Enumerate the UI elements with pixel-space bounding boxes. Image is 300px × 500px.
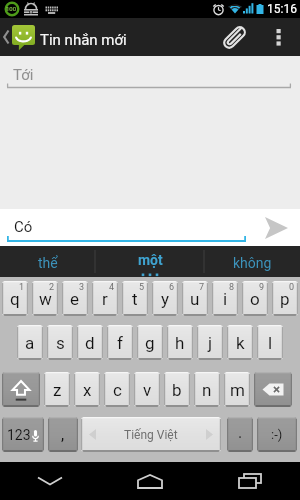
button[interactable]: n [194,372,220,407]
staticText: e [70,289,80,309]
button[interactable]: More options [256,18,300,56]
staticText: j [208,333,213,353]
button[interactable]: h [167,325,193,360]
button[interactable]: a [17,325,43,360]
staticText: d [85,333,95,353]
staticText: l [268,333,273,353]
staticText: g [145,333,155,353]
staticText: n [202,380,212,400]
staticText: w [39,289,52,309]
staticText: q [10,289,20,309]
staticText: f [117,333,123,353]
staticText: Tin nhắn mới [40,31,127,49]
button[interactable]: Recent apps [200,462,300,500]
staticText: k [236,333,245,353]
staticText: Có [14,218,33,236]
button[interactable]: thể [0,246,95,277]
staticText: Tiếng Việt [124,428,178,442]
button[interactable]: Home [100,462,200,500]
staticText: c [113,380,122,400]
staticText: 2 [49,282,55,293]
button[interactable]: w [32,281,58,316]
staticText: , [61,425,65,444]
button[interactable]: f [107,325,133,360]
staticText: 9 [259,282,265,293]
button[interactable]: o [242,281,268,316]
button[interactable]: 123 [2,417,44,452]
staticText: 123 [7,427,31,443]
staticText: . [238,423,243,442]
staticText: 8 [229,282,235,293]
button[interactable]: :-) [257,417,297,452]
staticText: o [250,289,260,309]
button[interactable]: i [212,281,238,316]
staticText: t [132,289,138,309]
button[interactable]: j [197,325,223,360]
staticText: a [25,333,35,353]
staticText: :-) [271,427,283,442]
button[interactable]: một [95,246,204,277]
button[interactable]: u [182,281,208,316]
staticText: s [56,333,65,353]
button[interactable]: q [2,281,28,316]
staticText: 100 [6,5,17,12]
staticText: 0 [289,282,295,293]
button[interactable]: m [224,372,250,407]
staticText: Tới [13,66,34,84]
button[interactable]: t [122,281,148,316]
button[interactable]: Tin nhắn mới [0,18,127,56]
button[interactable]: y [152,281,178,316]
staticText: 3 [79,282,85,293]
staticText: 4 [109,282,115,293]
staticText: 5 [139,282,145,293]
staticText: thể [38,255,58,271]
button[interactable]: g [137,325,163,360]
button[interactable]: k [227,325,253,360]
button[interactable]: Attach [212,18,256,56]
button[interactable]: c [104,372,130,407]
staticText: 1 [19,282,25,293]
button[interactable]: Send [252,209,300,246]
button[interactable]: e [62,281,88,316]
button[interactable]: s [47,325,73,360]
button[interactable]: d [77,325,103,360]
staticText: h [175,333,185,353]
staticText: 15:16 [267,2,297,16]
button[interactable]: v [134,372,160,407]
button[interactable]: p [272,281,298,316]
button[interactable]: không [204,246,300,277]
staticText: i [223,289,228,309]
button[interactable] [254,372,292,407]
staticText: y [161,289,170,309]
button[interactable]: Hide keyboard [0,462,100,500]
staticText: b [172,380,182,400]
staticText: một [138,252,163,268]
button[interactable] [2,372,40,407]
button[interactable]: Tiếng Việt [81,417,221,452]
staticText: z [53,380,62,400]
button[interactable]: x [74,372,100,407]
button[interactable]: . [227,417,253,452]
staticText: 7 [199,282,205,293]
button[interactable]: , [48,417,78,452]
staticText: v [143,380,152,400]
staticText: p [280,289,290,309]
button[interactable]: z [44,372,70,407]
button[interactable]: r [92,281,118,316]
staticText: r [102,289,108,309]
staticText: x [83,380,92,400]
staticText: 6 [169,282,175,293]
button[interactable]: b [164,372,190,407]
staticText: không [233,255,272,271]
staticText: u [190,289,200,309]
staticText: m [230,380,245,400]
button[interactable]: l [257,325,283,360]
